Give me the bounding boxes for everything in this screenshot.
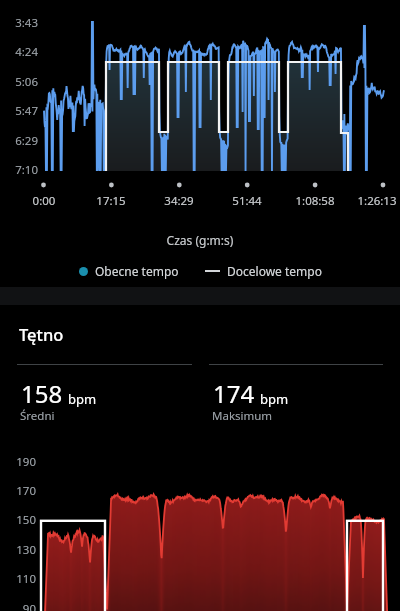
button[interactable]: 158 bbox=[17, 364, 192, 444]
staticText: 170 bbox=[0, 483, 36, 499]
staticText: 51:44 bbox=[215, 193, 279, 209]
staticText: bpm bbox=[260, 390, 289, 408]
staticText: 1:26:13 bbox=[345, 193, 400, 209]
staticText: Średni bbox=[20, 408, 55, 424]
staticText: 1:08:58 bbox=[283, 193, 347, 209]
staticText: 3:43 bbox=[0, 15, 38, 31]
staticText: 17:15 bbox=[79, 193, 143, 209]
staticText: 7:10 bbox=[0, 162, 38, 178]
staticText: 34:29 bbox=[147, 193, 211, 209]
staticText: 190 bbox=[0, 454, 36, 470]
staticText: 6:29 bbox=[0, 133, 38, 149]
staticText: 110 bbox=[0, 571, 36, 587]
button[interactable]: 174 bbox=[209, 364, 383, 444]
staticText: 4:24 bbox=[0, 44, 38, 60]
staticText: 158 bbox=[21, 377, 63, 410]
staticText: 174 bbox=[213, 377, 255, 410]
staticText: 150 bbox=[0, 512, 36, 528]
staticText: 130 bbox=[0, 542, 36, 558]
staticText: 5:47 bbox=[0, 103, 38, 119]
staticText: Docelowe tempo bbox=[227, 263, 322, 279]
staticText: Maksimum bbox=[212, 408, 273, 424]
button[interactable]: Docelowe tempo bbox=[203, 261, 324, 281]
staticText: 5:06 bbox=[0, 74, 38, 90]
button[interactable]: Obecne tempo bbox=[77, 261, 181, 281]
staticText: 0:00 bbox=[12, 193, 76, 209]
staticText: Tętno bbox=[19, 323, 64, 345]
staticText: Czas (g:m:s) bbox=[0, 232, 400, 248]
staticText: bpm bbox=[68, 390, 97, 408]
staticText: Obecne tempo bbox=[95, 263, 179, 279]
staticText: 90 bbox=[0, 601, 36, 611]
